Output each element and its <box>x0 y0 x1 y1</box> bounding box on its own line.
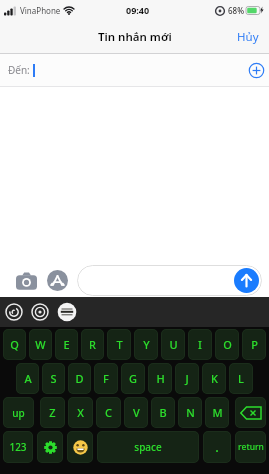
staticText: R <box>89 337 96 352</box>
button[interactable]: up <box>3 397 34 428</box>
button[interactable]: Q <box>3 329 26 360</box>
button[interactable]: Hủy <box>227 23 269 51</box>
staticText: X <box>77 405 84 420</box>
staticText: I <box>198 337 202 352</box>
button[interactable]: H <box>148 363 172 394</box>
staticText: space <box>134 440 162 454</box>
staticText: 68% <box>228 5 244 16</box>
button[interactable]: U <box>161 329 185 360</box>
button[interactable]: F <box>94 363 118 394</box>
staticText: A <box>24 371 32 386</box>
button[interactable] <box>235 397 266 428</box>
button[interactable] <box>77 265 262 296</box>
button[interactable]: . <box>203 431 231 463</box>
staticText: C <box>105 405 112 420</box>
staticText: W <box>35 337 46 352</box>
staticText: V <box>133 405 140 420</box>
staticText: return <box>238 441 264 453</box>
button[interactable]: D <box>68 363 91 394</box>
button[interactable]: I <box>188 329 212 360</box>
staticText: T <box>116 337 123 352</box>
staticText: J <box>185 371 189 386</box>
staticText: P <box>251 337 258 352</box>
button[interactable]: R <box>81 329 104 360</box>
staticText: . <box>215 438 219 456</box>
button[interactable]: M <box>205 397 229 428</box>
button[interactable]: P <box>242 329 266 360</box>
button[interactable]: C <box>96 397 121 428</box>
button[interactable] <box>5 303 23 321</box>
staticText: N <box>186 405 195 420</box>
staticText: O <box>223 337 232 352</box>
staticText: L <box>238 371 244 386</box>
staticText: Y <box>143 337 150 352</box>
staticText: Hủy <box>237 29 259 45</box>
button[interactable]: K <box>202 363 226 394</box>
button[interactable]: 123 <box>3 431 33 463</box>
button[interactable] <box>67 431 93 463</box>
button[interactable]: space <box>97 431 199 463</box>
button[interactable] <box>37 431 63 463</box>
staticText: up <box>12 406 25 420</box>
staticText: G <box>129 371 137 386</box>
staticText: D <box>75 371 84 386</box>
staticText: E <box>63 337 70 352</box>
button[interactable]: N <box>178 397 202 428</box>
staticText: F <box>103 371 109 386</box>
button[interactable]: B <box>151 397 175 428</box>
button[interactable]: return <box>235 431 266 463</box>
button[interactable] <box>245 59 268 82</box>
button[interactable]: V <box>124 397 148 428</box>
button[interactable] <box>234 268 259 293</box>
button[interactable]: S <box>42 363 65 394</box>
staticText: VinaPhone <box>20 5 61 16</box>
button[interactable]: Z <box>40 397 65 428</box>
staticText: Đến: <box>8 63 30 77</box>
button[interactable]: Y <box>134 329 158 360</box>
button[interactable] <box>16 272 38 290</box>
button[interactable]: T <box>107 329 131 360</box>
staticText: Q <box>10 337 19 352</box>
button[interactable]: Đến: <box>0 54 269 86</box>
button[interactable]: X <box>68 397 93 428</box>
staticText: 123 <box>9 440 27 454</box>
button[interactable]: W <box>29 329 52 360</box>
staticText: Z <box>49 405 56 420</box>
button[interactable] <box>57 302 77 322</box>
staticText: U <box>169 337 178 352</box>
staticText: Tin nhắn mới <box>98 29 172 45</box>
button[interactable] <box>47 270 68 291</box>
staticText: S <box>50 371 57 386</box>
staticText: M <box>212 405 223 420</box>
button[interactable]: J <box>175 363 199 394</box>
button[interactable]: O <box>215 329 239 360</box>
button[interactable]: E <box>55 329 78 360</box>
button[interactable] <box>31 303 49 321</box>
button[interactable]: L <box>229 363 253 394</box>
button[interactable]: G <box>121 363 145 394</box>
staticText: B <box>159 405 167 420</box>
staticText: 09:40 <box>126 4 150 16</box>
button[interactable]: A <box>16 363 39 394</box>
staticText: K <box>211 371 218 386</box>
staticText: H <box>156 371 165 386</box>
